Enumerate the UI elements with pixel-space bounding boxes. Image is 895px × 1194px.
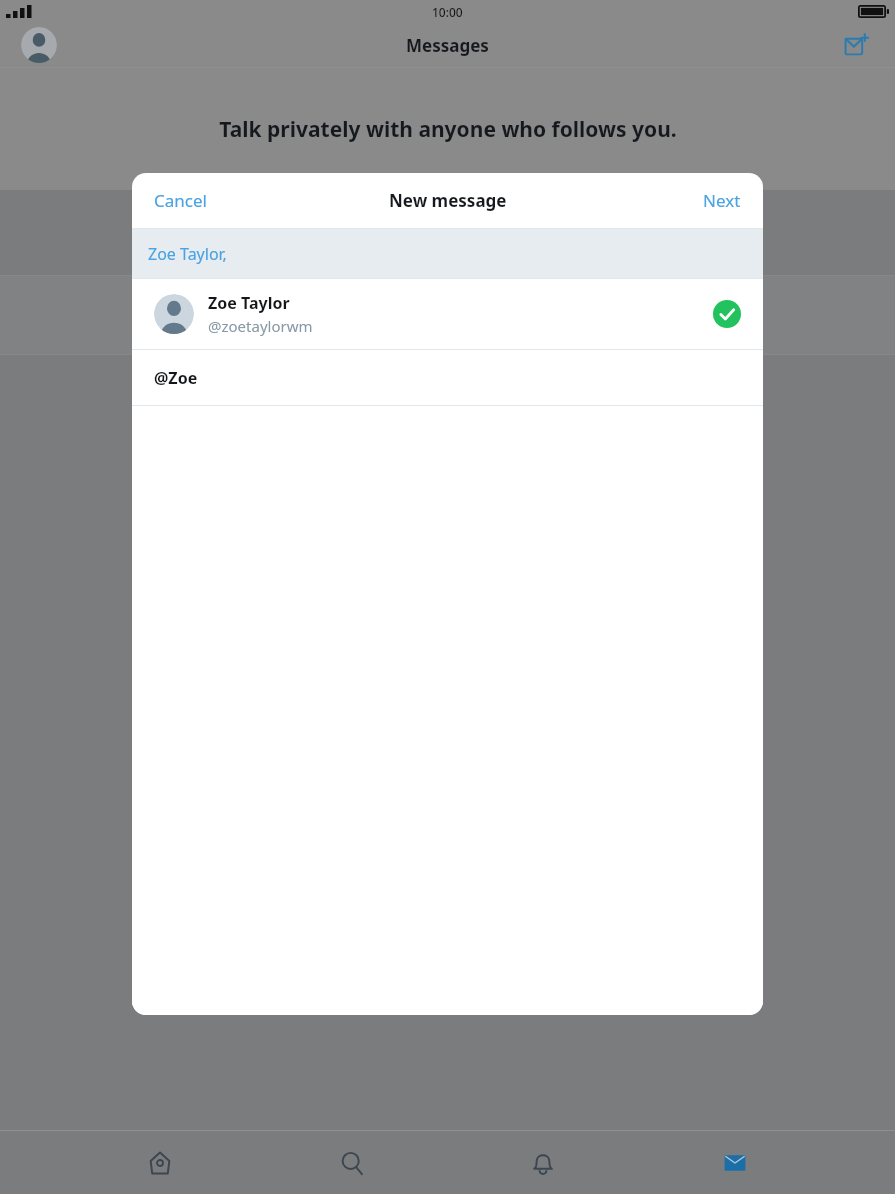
button[interactable]: Zoe Taylor (132, 279, 763, 349)
staticText: Next (703, 189, 741, 212)
staticText: Cancel (154, 189, 207, 212)
button[interactable]: Messages (704, 1132, 766, 1194)
button[interactable]: Cancel (140, 181, 221, 220)
button[interactable]: Home (129, 1132, 191, 1194)
button[interactable]: Zoe Taylor, (132, 229, 763, 278)
staticText: Talk privately with anyone who follows y… (219, 115, 677, 144)
button[interactable]: Next (689, 181, 755, 220)
staticText: 10:00 (432, 4, 463, 20)
staticText: New message (389, 189, 507, 212)
button[interactable]: New message (837, 25, 877, 65)
button[interactable]: Profile (21, 27, 57, 63)
staticText: Messages (406, 34, 489, 57)
button[interactable]: Search (321, 1132, 383, 1194)
button[interactable]: Notifications (512, 1132, 574, 1194)
staticText: Zoe Taylor, (148, 243, 227, 265)
staticText: @Zoe (154, 367, 198, 389)
staticText: @zoetaylorwm (208, 316, 313, 336)
button[interactable]: @Zoe (132, 350, 763, 405)
staticText: Zoe Taylor (208, 292, 290, 314)
